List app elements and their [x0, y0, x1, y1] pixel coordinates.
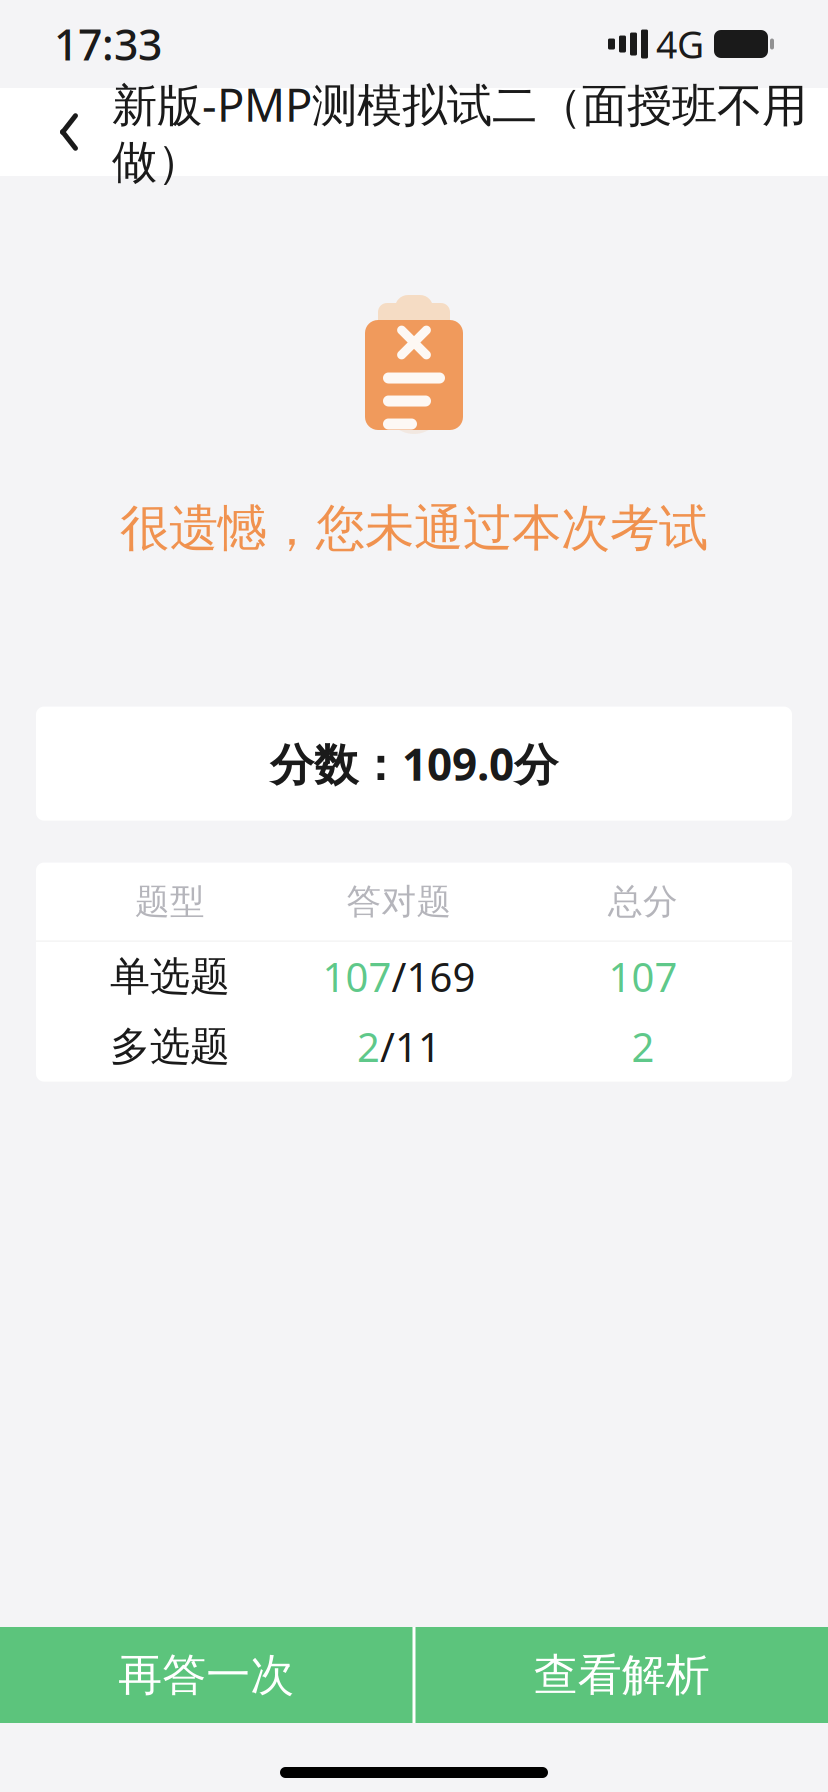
staticText: 17:33: [54, 16, 162, 72]
button[interactable]: 查看解析: [415, 1627, 828, 1723]
staticText: 很遗憾，您未通过本次考试: [120, 498, 708, 559]
staticText: 单选题: [110, 952, 230, 1001]
button[interactable]: 再答一次: [0, 1627, 412, 1723]
staticText: 2: [631, 1020, 654, 1073]
staticText: 107: [322, 950, 391, 1003]
staticText: 再答一次: [118, 1648, 294, 1702]
staticText: 2: [357, 1020, 380, 1073]
staticText: 分数：109.0分: [270, 734, 558, 793]
staticText: 查看解析: [534, 1648, 710, 1702]
staticText: /169: [391, 950, 475, 1003]
staticText: /11: [380, 1020, 441, 1073]
staticText: 107: [608, 950, 677, 1003]
staticText: 多选题: [110, 1022, 230, 1071]
staticText: 总分: [608, 880, 678, 923]
staticText: 答对题: [346, 880, 451, 923]
staticText: 新版-PMP测模拟试二（面授班不用做）: [112, 74, 807, 190]
button[interactable]: Back: [26, 88, 112, 176]
staticText: 4G: [656, 19, 704, 69]
staticText: 题型: [135, 880, 205, 923]
